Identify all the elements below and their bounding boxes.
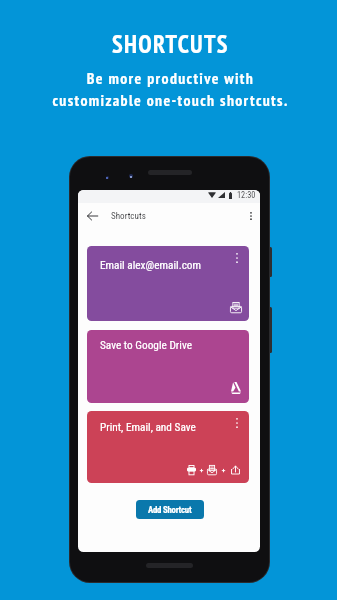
staticText: Be more productive with customizable one… (52, 68, 289, 110)
staticText: Shortcuts (111, 211, 146, 222)
staticText: SHORTCUTS (112, 28, 229, 59)
button[interactable]: Back (84, 208, 100, 224)
staticText: Email alex@email.com (100, 259, 202, 272)
button[interactable]: Email alex@email.com (87, 246, 249, 321)
staticText: 12:30 (237, 190, 256, 200)
staticText: Save to Google Drive (100, 339, 192, 352)
button[interactable]: Add Shortcut (136, 500, 204, 519)
button[interactable]: More options (243, 208, 259, 224)
staticText: Print, Email, and Save (100, 421, 196, 434)
button[interactable]: Shortcut options (230, 251, 244, 265)
button[interactable]: Save to Google Drive (87, 330, 249, 403)
button[interactable]: Print, Email, and Save (87, 411, 249, 483)
button[interactable]: Shortcut options (230, 416, 244, 430)
staticText: Add Shortcut (148, 505, 192, 515)
